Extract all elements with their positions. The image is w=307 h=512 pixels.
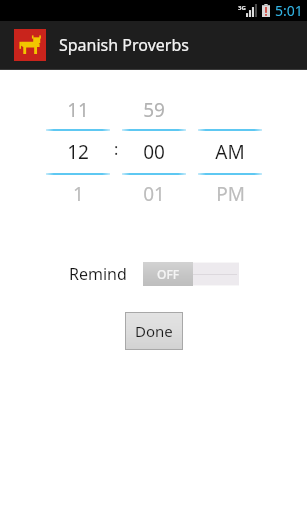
button[interactable]: 11 (46, 91, 110, 213)
staticText: AM (215, 139, 245, 165)
button[interactable]: Done (126, 313, 182, 349)
staticText: PM (216, 181, 245, 207)
other: App icon (14, 29, 46, 61)
staticText: Spanish Proverbs (59, 34, 189, 56)
staticText: 11 (67, 97, 89, 123)
staticText: Remind (69, 263, 127, 285)
staticText: : (114, 138, 119, 160)
button[interactable]: 59 (122, 91, 186, 213)
button[interactable]: Remind toggle, off (143, 261, 239, 287)
staticText: 00 (143, 139, 165, 165)
staticText: Done (135, 321, 173, 341)
button[interactable]: AM (198, 91, 262, 213)
staticText: 5:01 (275, 1, 303, 20)
staticText: OFF (157, 266, 180, 282)
staticText: 12 (67, 139, 89, 165)
staticText: 1 (73, 181, 84, 207)
staticText: 01 (143, 181, 165, 207)
staticText: 3G (238, 4, 246, 12)
staticText: 59 (143, 97, 165, 123)
